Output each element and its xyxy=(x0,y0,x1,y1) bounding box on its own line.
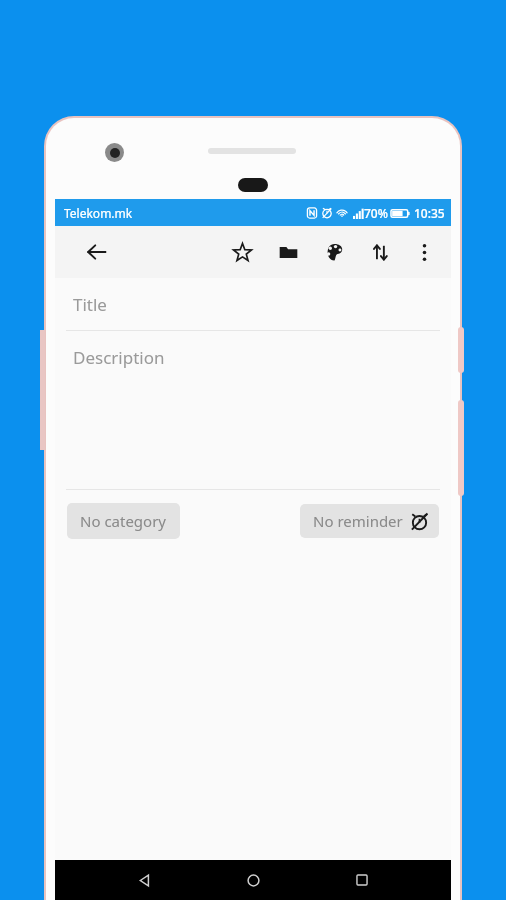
button[interactable]: Favorite xyxy=(221,231,263,273)
staticText: Telekom.mk xyxy=(64,205,133,221)
button[interactable]: Recents xyxy=(342,860,382,900)
button[interactable]: Back xyxy=(124,860,164,900)
button[interactable]: No category xyxy=(67,503,180,539)
button[interactable]: Folder xyxy=(267,231,309,273)
button[interactable]: Home xyxy=(233,860,273,900)
button[interactable]: More options xyxy=(403,231,445,273)
staticText: No category xyxy=(80,511,167,531)
button[interactable]: Title xyxy=(55,278,451,330)
button[interactable]: Back xyxy=(73,228,121,276)
staticText: 70% xyxy=(364,205,388,221)
staticText: Title xyxy=(73,293,107,316)
button[interactable]: No reminder xyxy=(300,504,439,538)
staticText: Description xyxy=(73,346,165,369)
button[interactable]: Description xyxy=(55,331,451,383)
staticText: No reminder xyxy=(313,511,403,531)
staticText: 10:35 xyxy=(414,205,445,221)
button[interactable]: Sort xyxy=(359,231,401,273)
button[interactable]: Color xyxy=(313,231,355,273)
